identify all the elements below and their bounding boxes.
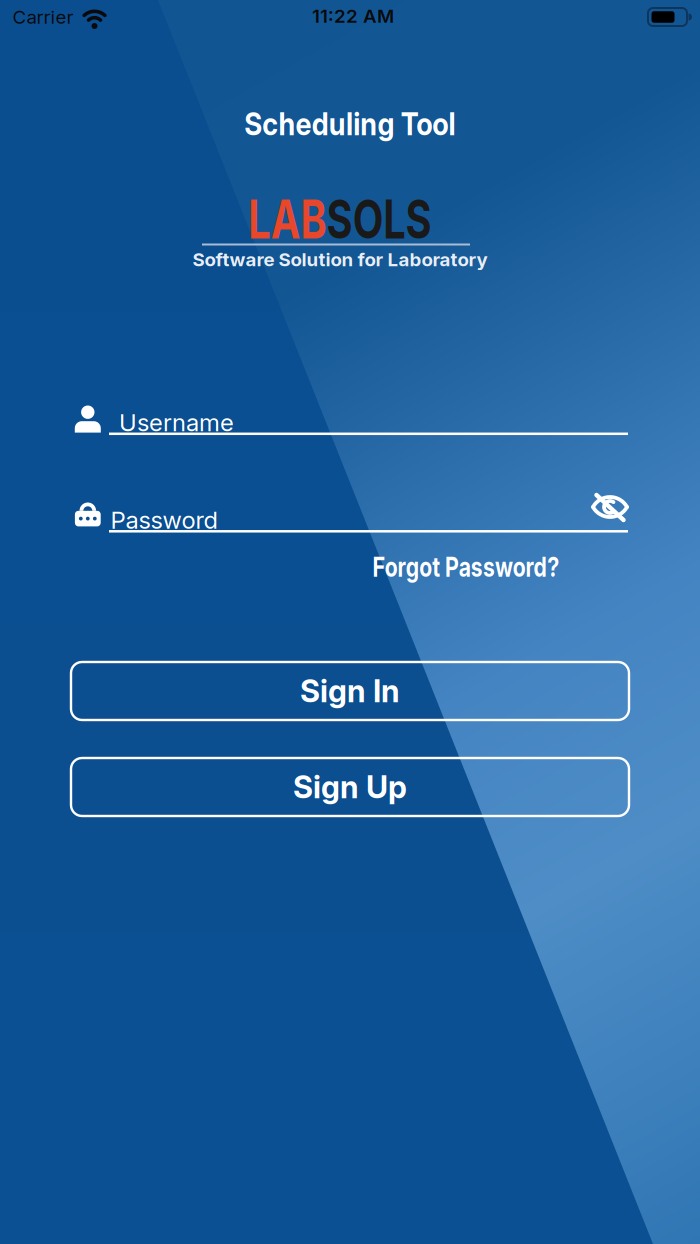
staticText: Carrier — [12, 6, 73, 28]
button[interactable] — [590, 490, 630, 524]
staticText: SOLS — [322, 187, 463, 250]
staticText: Software Solution for Laboratory — [192, 248, 487, 270]
staticText: 11:22 AM — [312, 5, 394, 27]
staticText: Forgot Password? — [350, 551, 582, 583]
staticText: Username — [119, 408, 234, 437]
staticText: Scheduling Tool — [232, 106, 467, 142]
staticText: Sign Up — [293, 769, 407, 805]
button[interactable]: Sign In — [71, 662, 629, 720]
button[interactable]: Password — [109, 495, 628, 551]
staticText: Sign In — [300, 673, 400, 709]
button[interactable]: Username — [109, 398, 628, 454]
button[interactable]: Sign Up — [71, 758, 629, 816]
staticText: LAB — [217, 187, 322, 250]
staticText: Password — [110, 506, 217, 534]
button[interactable]: Forgot Password? — [350, 551, 582, 583]
